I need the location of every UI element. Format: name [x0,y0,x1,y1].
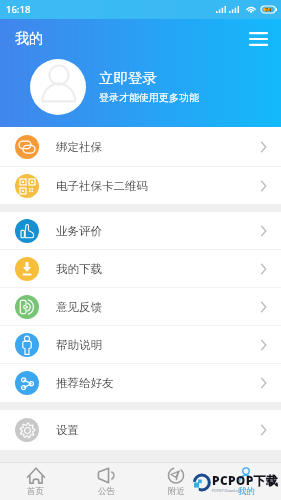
button[interactable]: 意见反馈 [0,288,281,325]
staticText: 帮助说明 [56,338,102,352]
staticText: 我的下载 [56,262,102,276]
button[interactable]: 公告 [71,463,141,500]
staticText: 附近 [168,486,185,497]
button[interactable]: 附近 [141,463,211,500]
button[interactable]: 我的 [211,463,281,500]
button[interactable]: 业务评价 [0,212,281,249]
button[interactable]: 帮助说明 [0,326,281,363]
staticText: 立即登录 [99,69,157,87]
button[interactable]: 我的下载 [0,250,281,287]
staticText: 推荐给好友 [56,376,114,390]
staticText: 电子社保卡二维码 [56,179,148,193]
button[interactable]: 设置 [0,410,281,450]
staticText: PCPOP下载 [212,472,279,488]
button[interactable]: 推荐给好友 [0,364,281,402]
staticText: PCPOP Download [212,488,242,493]
button[interactable]: 电子社保卡二维码 [0,167,281,204]
staticText: 我的 [238,486,255,497]
staticText: 意见反馈 [56,300,102,314]
staticText: 我的 [15,30,43,48]
staticText: 公告 [98,486,115,497]
staticText: 登录才能使用更多功能 [99,91,199,104]
staticText: 业务评价 [56,224,102,238]
button[interactable]: 首页 [0,463,71,500]
staticText: 绑定社保 [56,140,102,154]
staticText: 首页 [27,486,44,497]
staticText: 16:18 [6,3,31,16]
staticText: 74 [265,6,272,13]
button[interactable]: Menu [243,24,273,54]
button[interactable]: 绑定社保 [0,127,281,166]
staticText: 设置 [56,423,79,437]
